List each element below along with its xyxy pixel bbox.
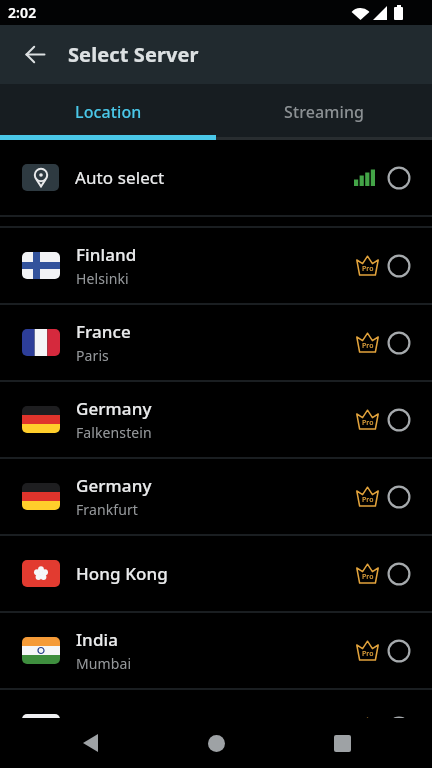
button[interactable]: Auto select bbox=[22, 140, 410, 215]
button[interactable]: Streaming bbox=[216, 84, 432, 140]
button[interactable]: Germany bbox=[22, 459, 410, 534]
button[interactable] bbox=[328, 729, 356, 757]
staticText: Pro bbox=[362, 418, 374, 428]
staticText: Pro bbox=[362, 649, 374, 659]
staticText: Germany bbox=[76, 397, 152, 420]
staticText: Pro bbox=[362, 341, 374, 351]
staticText: Hong Kong bbox=[76, 562, 168, 585]
button[interactable]: Hong Kong bbox=[22, 536, 410, 611]
staticText: Auto select bbox=[75, 166, 165, 189]
staticText: Frankfurt bbox=[76, 500, 138, 519]
staticText: Mumbai bbox=[76, 654, 132, 673]
staticText: Streaming bbox=[284, 101, 365, 123]
button[interactable]: Israel bbox=[22, 690, 410, 765]
button[interactable]: Finland bbox=[22, 228, 410, 303]
staticText: Falkenstein bbox=[76, 423, 152, 442]
staticText: Paris bbox=[76, 346, 109, 365]
staticText: Finland bbox=[76, 243, 137, 266]
staticText: Pro bbox=[362, 495, 374, 505]
staticText: Pro bbox=[362, 264, 374, 274]
staticText: Select Server bbox=[68, 41, 199, 68]
staticText: 2:02 bbox=[8, 3, 37, 22]
button[interactable]: India bbox=[22, 613, 410, 688]
button[interactable]: Germany bbox=[22, 382, 410, 457]
button[interactable] bbox=[0, 25, 64, 84]
staticText: Location bbox=[75, 101, 142, 123]
staticText: Pro bbox=[362, 572, 374, 582]
button[interactable]: Location bbox=[0, 84, 216, 140]
staticText: France bbox=[76, 320, 131, 343]
button[interactable] bbox=[76, 729, 104, 757]
button[interactable] bbox=[202, 729, 230, 757]
staticText: Germany bbox=[76, 474, 152, 497]
button[interactable]: France bbox=[22, 305, 410, 380]
staticText: India bbox=[76, 628, 119, 651]
staticText: Helsinki bbox=[76, 269, 129, 288]
staticText: Israel bbox=[76, 716, 122, 739]
